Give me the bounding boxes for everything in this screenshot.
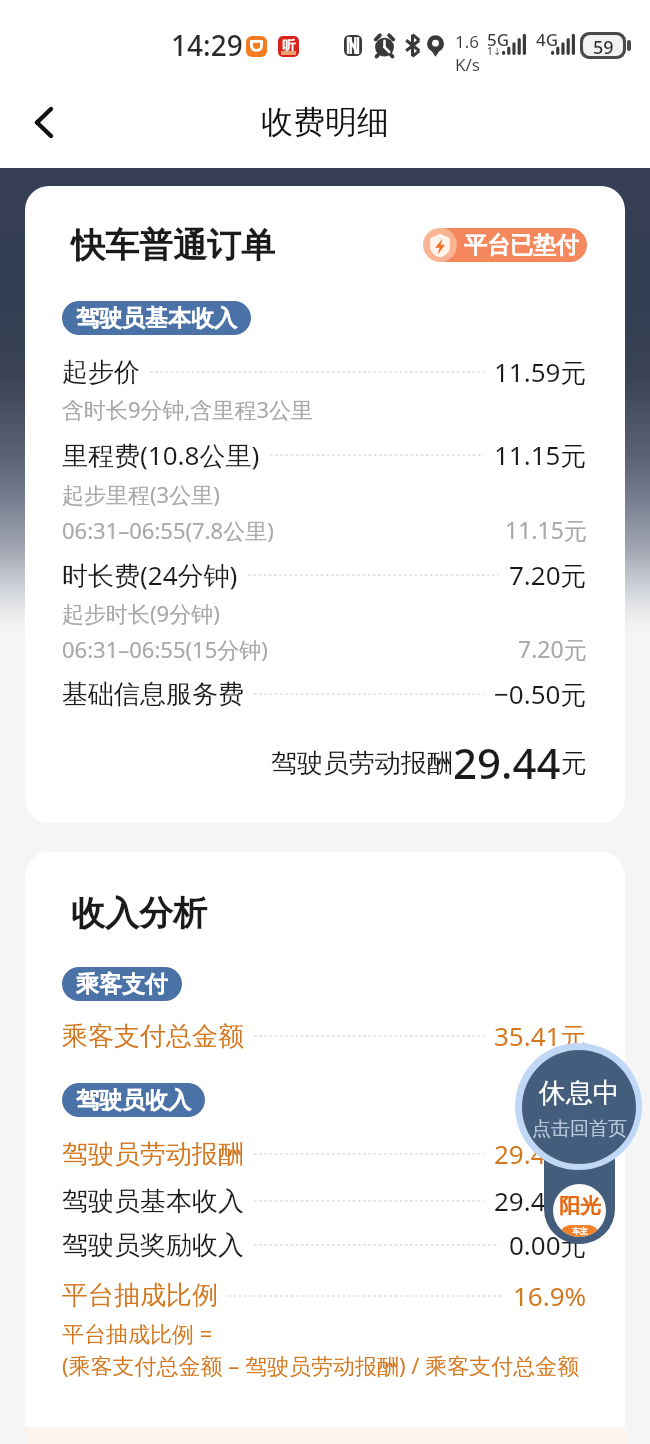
staticText: 驾驶员劳动报酬 bbox=[62, 1138, 244, 1171]
staticText: 平台已垫付 bbox=[464, 231, 579, 260]
staticText: 平台抽成比例 = bbox=[62, 1318, 213, 1348]
staticText: 59 bbox=[593, 35, 614, 56]
staticText: 起步价 bbox=[62, 356, 140, 389]
button[interactable]: Back bbox=[17, 95, 71, 149]
staticText: 车主 bbox=[572, 1226, 588, 1236]
staticText: 14:29 bbox=[171, 26, 243, 64]
staticText: 5G bbox=[487, 28, 510, 51]
staticText: 11.15元 bbox=[505, 514, 587, 545]
staticText: 基础信息服务费 bbox=[62, 678, 244, 711]
staticText: 时长费(24分钟) bbox=[62, 557, 238, 593]
staticText: 29.44元 bbox=[494, 1183, 587, 1219]
staticText: 06:31–06:55(7.8公里) bbox=[62, 515, 274, 545]
button[interactable]: 阳光车主 bbox=[544, 1084, 615, 1244]
staticText: 11.15元 bbox=[494, 437, 587, 473]
staticText: 听 bbox=[282, 37, 295, 53]
staticText: 29.44 bbox=[453, 734, 561, 784]
staticText: −0.50元 bbox=[494, 676, 587, 712]
button[interactable]: 驾驶员收入 bbox=[62, 1083, 205, 1117]
staticText: 收费明细 bbox=[261, 102, 389, 142]
button[interactable]: 驾驶员基本收入 bbox=[62, 301, 251, 335]
staticText: 驾驶员基本收入 bbox=[76, 304, 237, 333]
staticText: 收入分析 bbox=[71, 892, 207, 935]
staticText: 29.44元 bbox=[494, 1136, 587, 1172]
staticText: 1↓ bbox=[487, 44, 502, 58]
button[interactable]: 平台已垫付 bbox=[423, 227, 587, 263]
staticText: 4G bbox=[536, 28, 559, 51]
staticText: 7.20元 bbox=[518, 633, 587, 664]
staticText: 06:31–06:55(15分钟) bbox=[62, 634, 268, 664]
staticText: 起步时长(9分钟) bbox=[62, 598, 220, 628]
staticText: 点击回首页 bbox=[532, 1117, 627, 1141]
staticText: K/s bbox=[455, 53, 480, 76]
staticText: 驾驶员劳动报酬 bbox=[271, 747, 453, 780]
staticText: 平台抽成比例 bbox=[62, 1279, 218, 1312]
button[interactable]: 乘客支付 bbox=[62, 967, 182, 1001]
staticText: 快车普通订单 bbox=[71, 224, 275, 267]
staticText: 乘客支付总金额 bbox=[62, 1020, 244, 1053]
staticText: 驾驶员收入 bbox=[76, 1086, 191, 1115]
staticText: 0.00元 bbox=[509, 1227, 587, 1263]
staticText: 11.59元 bbox=[494, 354, 587, 390]
staticText: 驾驶员基本收入 bbox=[62, 1185, 244, 1218]
staticText: 阳光 bbox=[559, 1193, 601, 1219]
staticText: 驾驶员奖励收入 bbox=[62, 1229, 244, 1262]
staticText: 35.41元 bbox=[494, 1018, 587, 1054]
staticText: 1.6 bbox=[455, 30, 480, 53]
staticText: 元 bbox=[561, 747, 587, 780]
staticText: 含时长9分钟,含里程3公里 bbox=[62, 394, 314, 424]
staticText: 休息中 bbox=[539, 1076, 620, 1110]
staticText: 里程费(10.8公里) bbox=[62, 437, 260, 473]
staticText: 7.20元 bbox=[509, 557, 587, 593]
staticText: 起步里程(3公里) bbox=[62, 479, 220, 509]
staticText: 16.9% bbox=[513, 1278, 587, 1313]
button[interactable]: 休息中 bbox=[515, 1043, 642, 1170]
staticText: 乘客支付 bbox=[76, 970, 168, 999]
staticText: (乘客支付总金额 – 驾驶员劳动报酬) / 乘客支付总金额 bbox=[62, 1350, 580, 1380]
